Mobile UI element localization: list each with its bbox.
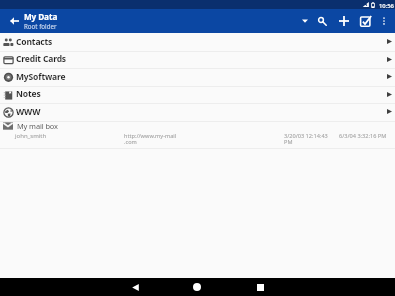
staticText: Notes <box>16 88 41 100</box>
staticText: john_smith <box>15 132 47 140</box>
staticText: MySoftware <box>16 71 66 83</box>
button[interactable]: Select all <box>357 9 374 33</box>
button[interactable]: Search <box>313 9 330 33</box>
staticText: 6/3/04 3:32:16 PM <box>339 132 387 140</box>
button[interactable]: MySoftware <box>0 69 395 87</box>
button[interactable]: My mail box <box>0 121 395 149</box>
staticText: Root folder <box>24 22 57 30</box>
button[interactable]: Back <box>113 278 157 296</box>
staticText: Credit Cards <box>16 53 66 65</box>
staticText: My Data <box>24 11 58 22</box>
staticText: 3/20/03 12:14:43 PM <box>284 132 328 146</box>
button[interactable]: Contacts <box>0 34 395 52</box>
staticText: http://www.my-mail .com <box>124 132 177 146</box>
staticText: My mail box <box>17 121 58 131</box>
button[interactable]: Credit Cards <box>0 52 395 69</box>
button[interactable]: Filter <box>296 9 313 33</box>
staticText: 10:56 <box>379 2 394 10</box>
staticText: WWW <box>16 106 41 118</box>
button[interactable]: Add <box>335 9 352 33</box>
button[interactable]: Notes <box>0 87 395 104</box>
button[interactable]: Back <box>4 11 24 31</box>
button[interactable]: More options <box>375 9 392 33</box>
staticText: Contacts <box>16 36 53 48</box>
button[interactable]: Home <box>175 278 219 296</box>
button[interactable]: Recent apps <box>238 278 282 296</box>
button[interactable]: WWW <box>0 104 395 122</box>
